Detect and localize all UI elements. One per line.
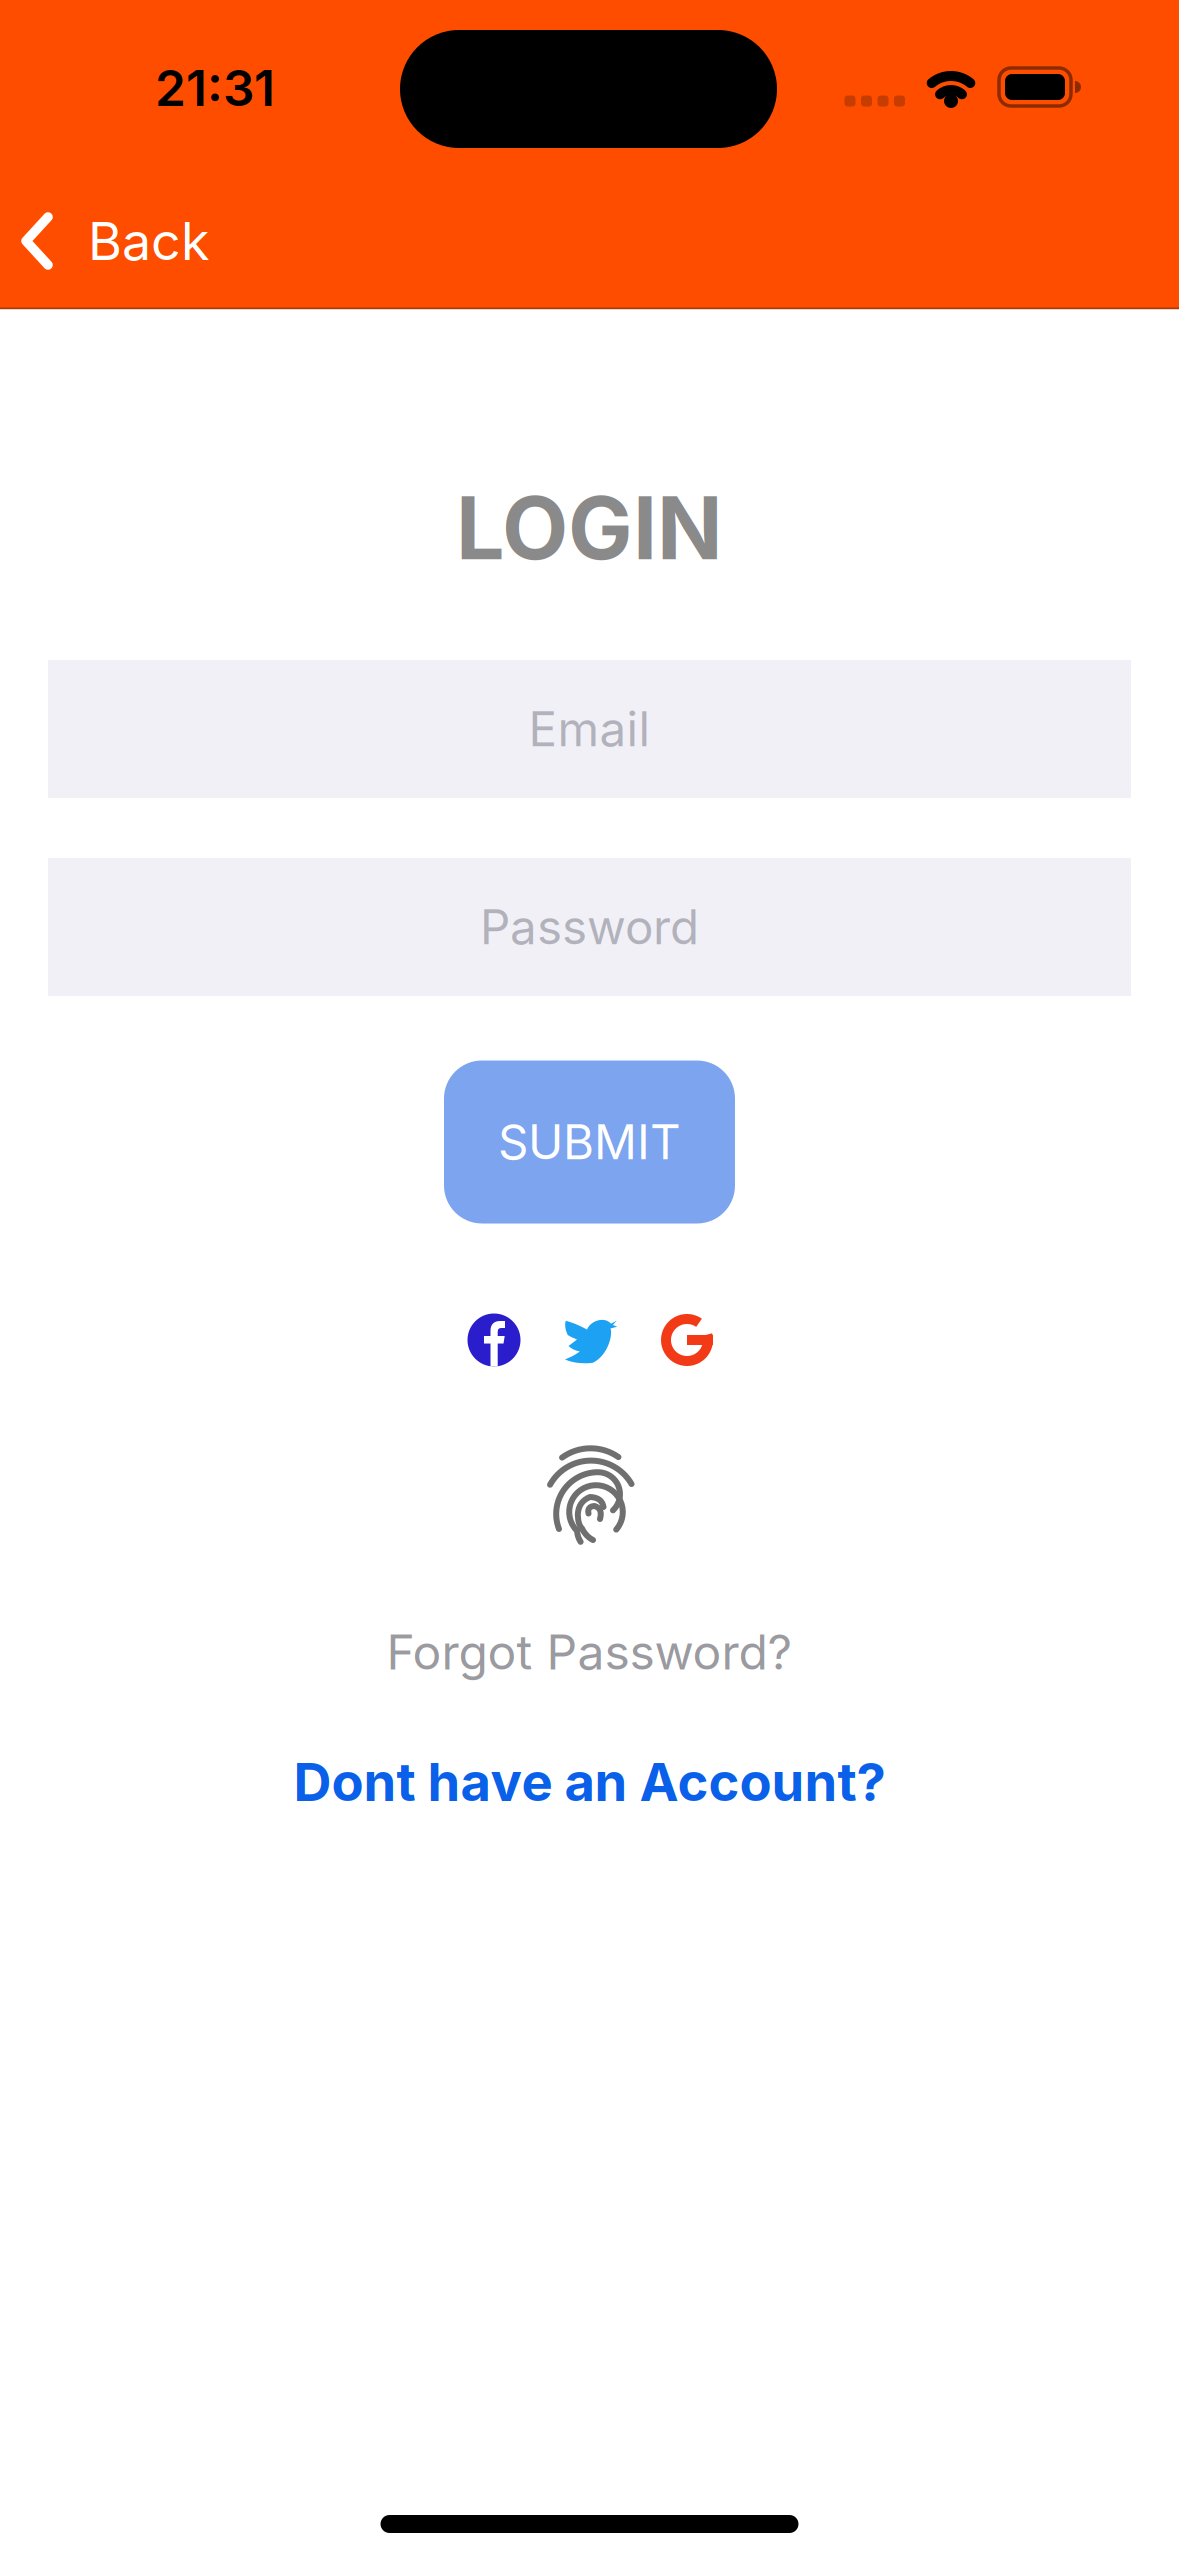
button[interactable]: Forgot Password? (386, 1623, 792, 1681)
button[interactable]: Sign in with Google (661, 1314, 713, 1366)
staticText: Email (528, 700, 650, 758)
button[interactable]: Email (48, 660, 1131, 798)
button[interactable]: Dont have an Account? (293, 1750, 885, 1814)
staticText: Password (480, 898, 699, 956)
button[interactable]: Sign in with Touch ID (530, 1430, 650, 1560)
staticText: Dont have an Account? (293, 1750, 885, 1814)
button[interactable]: SUBMIT (444, 1060, 735, 1223)
button[interactable]: Password (48, 858, 1131, 996)
staticText: Back (88, 209, 210, 272)
staticText: 21:31 (155, 58, 275, 118)
staticText: Forgot Password? (386, 1623, 792, 1681)
button[interactable]: Back (24, 196, 210, 286)
button[interactable]: Sign in with Twitter (563, 1318, 617, 1363)
staticText: LOGIN (456, 476, 723, 580)
button[interactable]: Sign in with Facebook (467, 1313, 520, 1366)
staticText: SUBMIT (498, 1113, 681, 1171)
